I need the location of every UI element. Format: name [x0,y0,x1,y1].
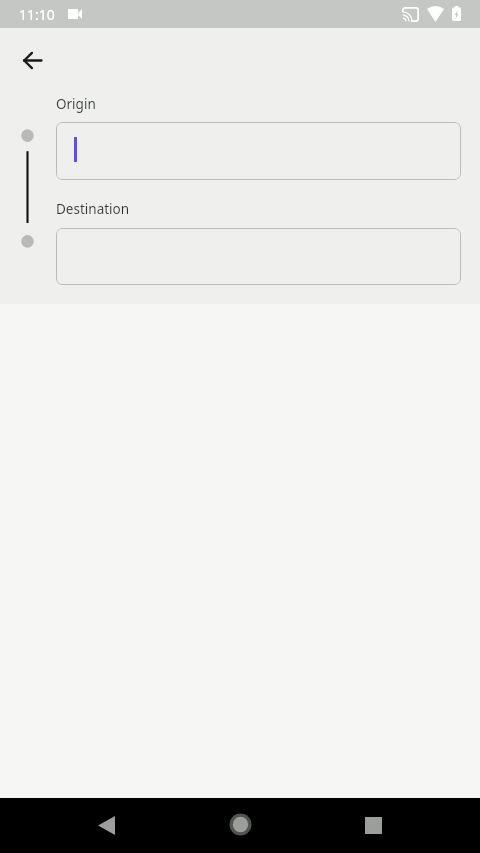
staticText: 11:10 [19,5,55,24]
button[interactable]: Recent apps [349,801,397,849]
button[interactable] [56,122,461,180]
button[interactable]: Back [82,801,130,849]
staticText: Origin [56,95,96,113]
staticText: Destination [56,200,130,218]
button[interactable] [56,228,461,285]
button[interactable]: Navigate up [10,38,55,83]
button[interactable]: Home [216,800,264,848]
